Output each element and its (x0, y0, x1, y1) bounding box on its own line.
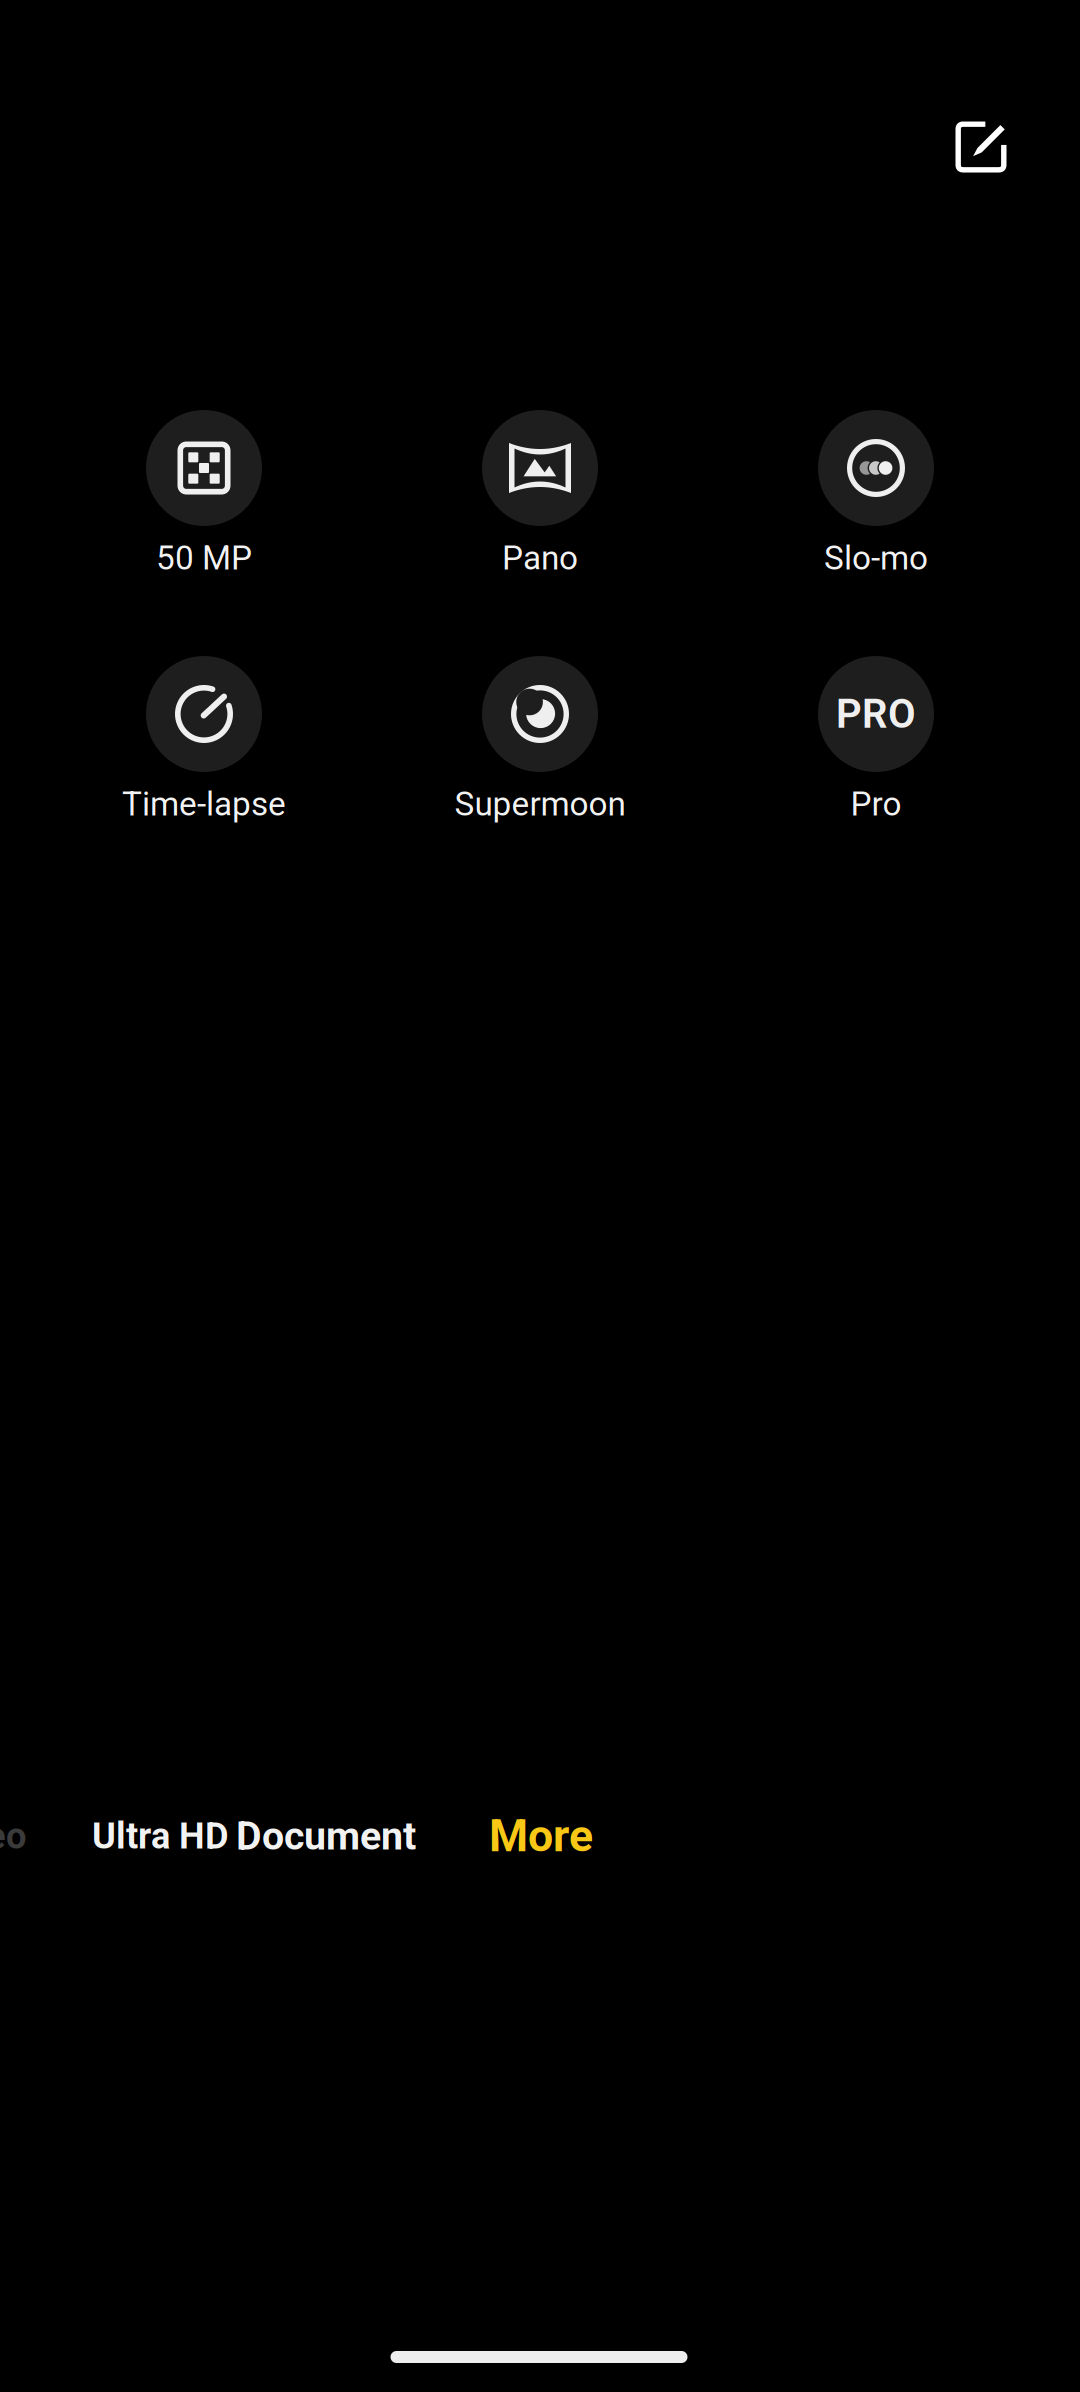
button[interactable]: PRO (726, 656, 1026, 826)
staticText: More (489, 1810, 593, 1862)
staticText: Video (0, 1815, 26, 1857)
staticText: Slo-mo (824, 538, 928, 578)
button[interactable]: 50 MP (54, 410, 354, 580)
button[interactable]: Slo-mo (726, 410, 1026, 580)
button[interactable]: More (489, 1810, 593, 1862)
button[interactable]: Time-lapse (54, 656, 354, 826)
staticText: Time-lapse (122, 784, 286, 824)
staticText: 50 MP (156, 538, 252, 578)
staticText: Ultra HD (92, 1815, 229, 1857)
staticText: Document (236, 1813, 416, 1859)
staticText: Pano (502, 538, 578, 578)
button[interactable]: Edit camera modes (931, 97, 1031, 197)
button[interactable]: Ultra HD (92, 1813, 416, 1859)
staticText: Supermoon (454, 784, 625, 824)
staticText: Pro (850, 784, 901, 824)
button[interactable]: Pano (390, 410, 690, 580)
staticText: PRO (836, 691, 916, 737)
button[interactable]: Supermoon (390, 656, 690, 826)
button[interactable]: Video (0, 1815, 26, 1857)
